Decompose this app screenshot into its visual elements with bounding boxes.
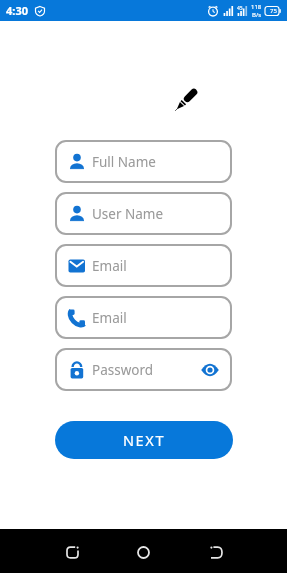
button[interactable]: [125, 534, 161, 570]
staticText: Full Name: [92, 153, 156, 171]
button[interactable]: NEXT: [55, 421, 233, 459]
staticText: Password: [92, 361, 154, 379]
button[interactable]: [198, 534, 234, 570]
staticText: 4:30: [6, 3, 28, 18]
button[interactable]: Full Name: [55, 140, 232, 183]
staticText: User Name: [92, 205, 164, 223]
staticText: Email: [92, 309, 127, 327]
button[interactable]: User Name: [55, 192, 232, 235]
button[interactable]: [54, 534, 90, 570]
staticText: B/s: [252, 11, 262, 19]
staticText: 75: [270, 7, 277, 15]
staticText: 118: [251, 3, 262, 11]
button[interactable]: Email: [55, 296, 232, 339]
staticText: NEXT: [123, 430, 166, 450]
button[interactable]: Password: [55, 348, 232, 391]
staticText: 45: [237, 5, 243, 12]
staticText: Email: [92, 257, 127, 275]
button[interactable]: Email: [55, 244, 232, 287]
